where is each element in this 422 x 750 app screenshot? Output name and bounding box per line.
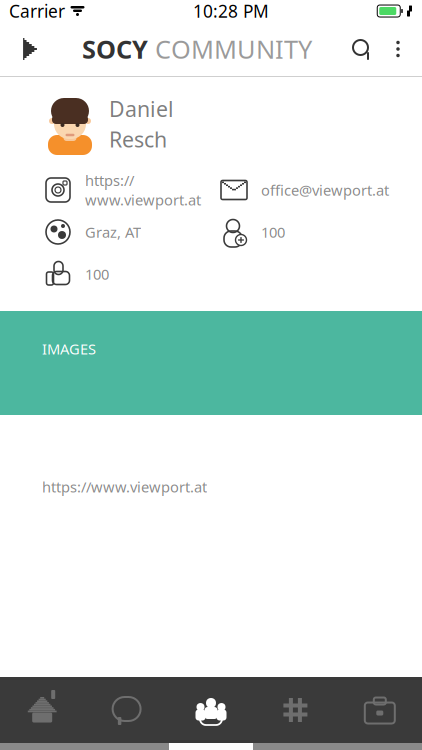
- button[interactable]: office@viewport.at: [219, 169, 406, 211]
- staticText: Resch: [109, 125, 167, 153]
- staticText: Daniel: [109, 95, 174, 123]
- button[interactable]: Tags: [253, 677, 338, 743]
- staticText: https://www.viewport.at: [42, 477, 207, 496]
- button[interactable]: More options: [382, 27, 414, 71]
- button[interactable]: Home: [0, 677, 84, 743]
- button[interactable]: 100: [219, 211, 406, 253]
- staticText: 100: [85, 264, 109, 284]
- staticText: https://www.viewport.at: [85, 170, 201, 209]
- staticText: 100: [261, 222, 285, 242]
- staticText: IMAGES: [42, 339, 96, 359]
- button[interactable]: Back: [8, 27, 52, 71]
- staticText: Graz, AT: [85, 222, 141, 242]
- staticText: 10:28 PM: [193, 0, 269, 22]
- staticText: office@viewport.at: [261, 180, 389, 200]
- button[interactable]: Messages: [84, 677, 169, 743]
- staticText: SOCY: [82, 32, 148, 66]
- button[interactable]: https://www.viewport.at: [43, 169, 219, 211]
- button[interactable]: Business: [338, 677, 422, 743]
- button[interactable]: 100: [43, 253, 219, 295]
- button[interactable]: Search: [342, 27, 382, 71]
- staticText: Carrier: [9, 0, 65, 22]
- button[interactable]: Graz, AT: [43, 211, 219, 253]
- button[interactable]: Community: [169, 677, 253, 743]
- staticText: COMMUNITY: [148, 32, 312, 66]
